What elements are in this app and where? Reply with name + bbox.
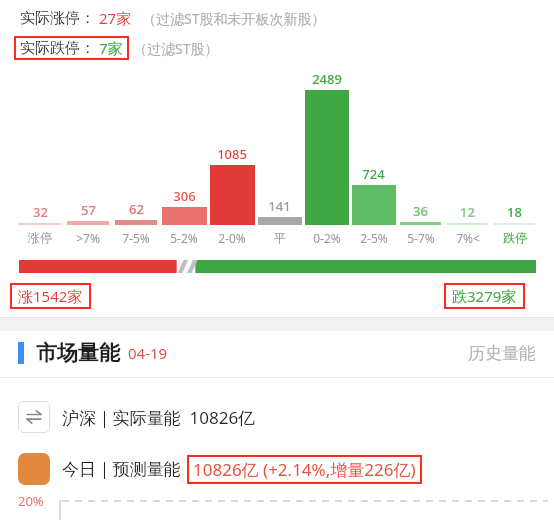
staticText: 36 bbox=[413, 202, 428, 220]
staticText: 0-2% bbox=[313, 230, 341, 246]
staticText: 724 bbox=[362, 165, 385, 183]
button[interactable]: 32 bbox=[16, 70, 64, 225]
button[interactable]: 57 bbox=[64, 70, 112, 225]
staticText: 跌3279家 bbox=[452, 286, 517, 306]
staticText: 实际涨停： bbox=[20, 9, 95, 28]
staticText: 141 bbox=[268, 197, 291, 215]
button[interactable]: 724 bbox=[350, 70, 397, 225]
staticText: 2489 bbox=[312, 70, 342, 88]
button[interactable]: 141 bbox=[256, 70, 303, 225]
staticText: 12 bbox=[460, 203, 475, 221]
staticText: （过滤ST股） bbox=[133, 39, 219, 58]
button[interactable]: 36 bbox=[397, 70, 444, 225]
staticText: 27家 bbox=[99, 8, 132, 28]
button[interactable]: 2489 bbox=[303, 70, 350, 225]
staticText: 涨停 bbox=[28, 230, 52, 245]
staticText: 7-5% bbox=[122, 230, 150, 246]
staticText: 历史量能 bbox=[468, 343, 536, 364]
staticText: 2-5% bbox=[360, 230, 388, 246]
staticText: 1085 bbox=[217, 145, 247, 163]
staticText: 20% bbox=[18, 492, 44, 510]
staticText: 实际跌停： bbox=[20, 39, 95, 58]
staticText: 04-19 bbox=[128, 343, 168, 363]
staticText: 18 bbox=[507, 203, 522, 221]
staticText: 32 bbox=[33, 203, 48, 221]
staticText: （过滤ST股和未开板次新股） bbox=[142, 9, 326, 28]
staticText: 5-7% bbox=[407, 230, 435, 246]
staticText: 2-0% bbox=[218, 230, 246, 246]
button[interactable]: 历史量能 bbox=[468, 343, 536, 364]
button[interactable]: 12 bbox=[444, 70, 491, 225]
staticText: 今日｜预测量能 bbox=[62, 459, 181, 480]
button[interactable]: 1085 bbox=[208, 70, 256, 225]
staticText: 平 bbox=[274, 230, 286, 245]
staticText: >7% bbox=[76, 230, 100, 246]
button[interactable]: 18 bbox=[491, 70, 538, 225]
staticText: 市场量能 bbox=[36, 340, 120, 366]
staticText: 涨1542家 bbox=[18, 286, 83, 306]
staticText: 62 bbox=[129, 200, 144, 218]
other: 切换指数 bbox=[18, 401, 50, 433]
staticText: 沪深｜实际量能 10826亿 bbox=[62, 406, 256, 429]
staticText: 5-2% bbox=[170, 230, 198, 246]
button[interactable]: 306 bbox=[160, 70, 208, 225]
staticText: 跌停 bbox=[503, 230, 527, 245]
staticText: 10826亿 (+2.14%,增量226亿) bbox=[193, 458, 416, 481]
staticText: 57 bbox=[81, 201, 96, 219]
button[interactable]: 62 bbox=[112, 70, 160, 225]
button[interactable] bbox=[19, 260, 536, 273]
staticText: 7家 bbox=[99, 38, 123, 58]
button[interactable]: 今日｜预测量能 bbox=[18, 450, 422, 488]
button[interactable]: 跌3279家 bbox=[452, 286, 517, 306]
staticText: 7%< bbox=[456, 230, 480, 246]
button[interactable]: 切换指数 bbox=[18, 398, 256, 436]
button[interactable]: 涨1542家 bbox=[18, 286, 83, 306]
staticText: 306 bbox=[173, 187, 196, 205]
